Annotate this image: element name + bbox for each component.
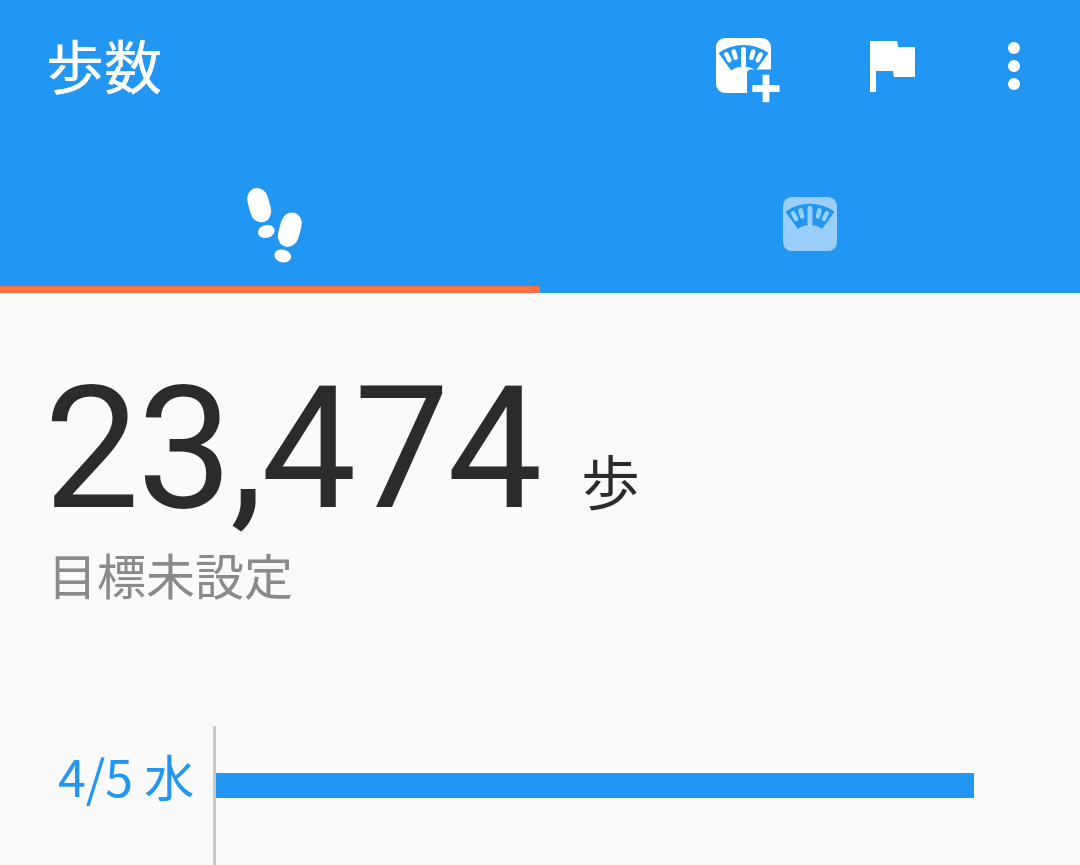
- staticText: 23,474: [44, 349, 541, 548]
- staticText: 歩: [581, 437, 641, 522]
- button[interactable]: [0, 149, 540, 293]
- staticText: 4/5 水: [58, 739, 195, 811]
- staticText: 目標未設定: [48, 538, 294, 609]
- staticText: 歩数: [46, 22, 163, 106]
- button[interactable]: [700, 21, 788, 109]
- button[interactable]: [540, 149, 1080, 293]
- button[interactable]: [847, 21, 935, 109]
- button[interactable]: [970, 21, 1058, 109]
